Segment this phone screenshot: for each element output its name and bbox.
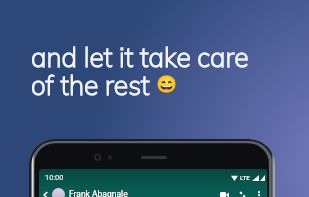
staticText: of the rest xyxy=(31,68,150,101)
staticText: and let it take care xyxy=(31,40,249,73)
button[interactable]: Contact photo xyxy=(52,188,65,197)
button[interactable]: Video call xyxy=(218,188,231,197)
staticText: 😄 xyxy=(156,74,178,94)
button[interactable]: More options xyxy=(253,189,264,197)
staticText: LTE xyxy=(240,174,250,181)
button[interactable]: Call xyxy=(236,188,249,197)
staticText: 10:00 xyxy=(45,173,64,182)
staticText: Frank Abagnale xyxy=(69,189,128,197)
button[interactable]: Back xyxy=(40,189,51,197)
